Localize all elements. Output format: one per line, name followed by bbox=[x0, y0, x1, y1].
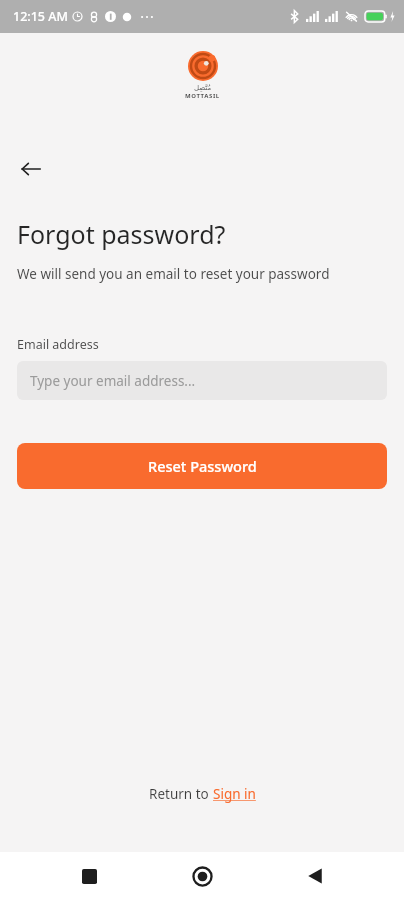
staticText: 12:15 AM bbox=[13, 8, 68, 25]
staticText: Return to bbox=[149, 785, 213, 803]
staticText: Forgot password? bbox=[17, 217, 226, 251]
button[interactable]: Back bbox=[9, 147, 53, 191]
staticText: Type your email address... bbox=[30, 372, 196, 390]
button[interactable]: Type your email address... bbox=[17, 361, 387, 400]
staticText: Sign in bbox=[213, 785, 256, 803]
staticText: We will send you an email to reset your … bbox=[17, 265, 330, 283]
staticText: Email address bbox=[17, 336, 99, 353]
button[interactable]: Reset Password bbox=[17, 443, 387, 489]
staticText: MOTTASIL bbox=[185, 92, 220, 100]
staticText: مُتَّصِل bbox=[194, 84, 212, 92]
button[interactable]: Recent apps bbox=[65, 852, 113, 900]
button[interactable]: Sign in bbox=[213, 785, 256, 803]
button[interactable]: Home bbox=[178, 852, 226, 900]
button[interactable]: Back bbox=[291, 852, 339, 900]
staticText: Reset Password bbox=[148, 456, 257, 476]
